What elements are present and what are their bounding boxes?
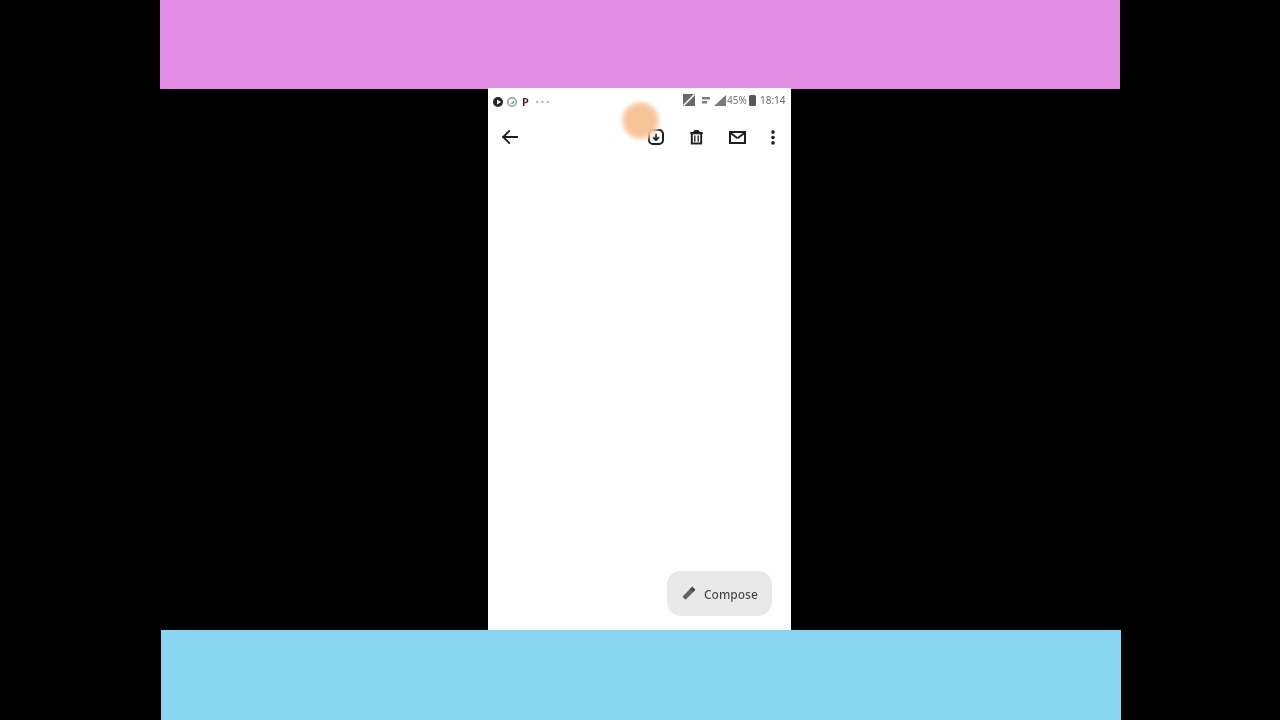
staticText: Compose (704, 586, 758, 602)
button[interactable]: Delete (679, 120, 713, 154)
button[interactable]: Mark as unread (720, 120, 754, 154)
staticText: 45% (727, 93, 747, 107)
button[interactable]: Back (493, 120, 527, 154)
button[interactable]: More options (756, 120, 790, 154)
staticText: 18:14 (760, 93, 786, 107)
button[interactable]: Compose (667, 571, 772, 616)
staticText: P (522, 94, 529, 109)
button[interactable]: Archive (639, 120, 673, 154)
